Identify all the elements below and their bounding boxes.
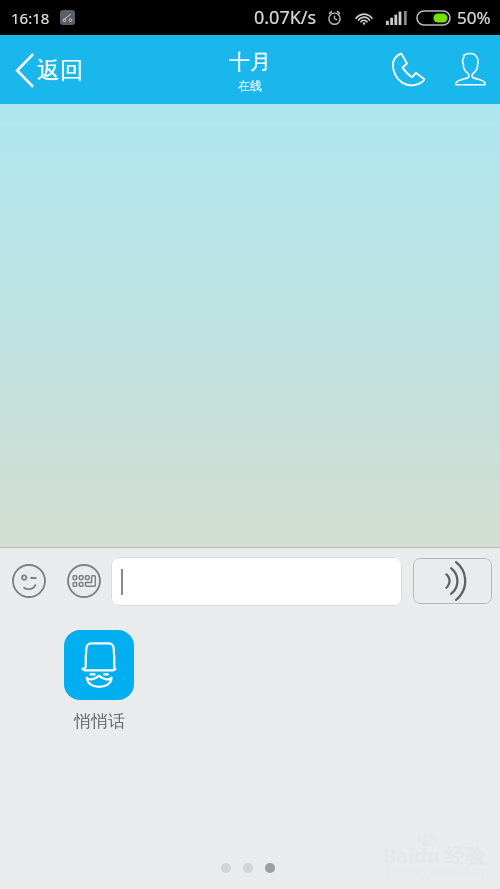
button[interactable]: Voice bbox=[413, 558, 492, 604]
staticText: 悄悄话 bbox=[74, 711, 125, 732]
button[interactable]: 悄悄话 bbox=[64, 630, 134, 732]
button[interactable]: 返回 bbox=[16, 54, 91, 85]
staticText: 16:18 bbox=[11, 8, 50, 28]
button[interactable]: Emoji bbox=[12, 564, 46, 598]
staticText: 50% bbox=[457, 6, 491, 29]
button[interactable]: Profile bbox=[448, 48, 492, 92]
staticText: 返回 bbox=[37, 56, 83, 85]
staticText: 0.07K/s bbox=[254, 5, 317, 30]
button[interactable]: Keyboard bbox=[67, 564, 101, 598]
button[interactable] bbox=[111, 557, 402, 606]
staticText: 十月 bbox=[229, 49, 271, 75]
staticText: 在线 bbox=[238, 78, 262, 93]
button[interactable]: Call bbox=[389, 48, 433, 92]
